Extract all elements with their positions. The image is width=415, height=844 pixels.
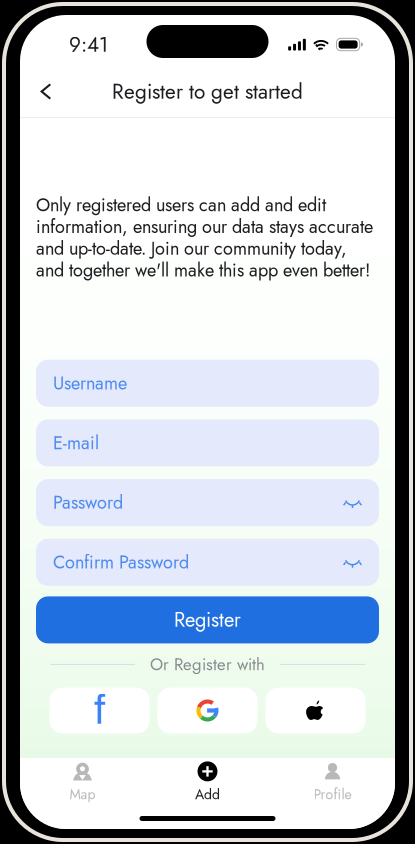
button[interactable]: Profile	[270, 758, 395, 808]
staticText: Username	[53, 370, 127, 396]
button[interactable]: Register	[36, 596, 379, 643]
staticText: Only registered users can add and edit i…	[36, 192, 373, 283]
staticText: Password	[53, 490, 123, 516]
staticText: f	[94, 689, 105, 732]
staticText: Or Register with	[150, 652, 265, 676]
button[interactable]: Map	[20, 758, 145, 808]
staticText: 9:41	[69, 30, 108, 59]
button[interactable]: E-mail	[36, 419, 379, 466]
button[interactable]: Back	[28, 73, 64, 109]
staticText: Register to get started	[112, 77, 303, 106]
staticText: Add	[195, 784, 220, 805]
button[interactable]: Continue with Facebook	[49, 687, 149, 733]
staticText: Profile	[313, 784, 351, 805]
staticText: Map	[69, 784, 95, 805]
button[interactable]: Continue with Google	[157, 687, 257, 733]
staticText: Confirm Password	[53, 549, 189, 575]
button[interactable]: Username	[36, 360, 379, 407]
staticText: E-mail	[53, 430, 99, 456]
button[interactable]: Password	[36, 479, 379, 526]
button[interactable]: Confirm Password	[36, 539, 379, 586]
button[interactable]: Continue with Apple	[265, 687, 365, 733]
staticText: Register	[174, 605, 241, 634]
button[interactable]: Add	[145, 758, 270, 808]
